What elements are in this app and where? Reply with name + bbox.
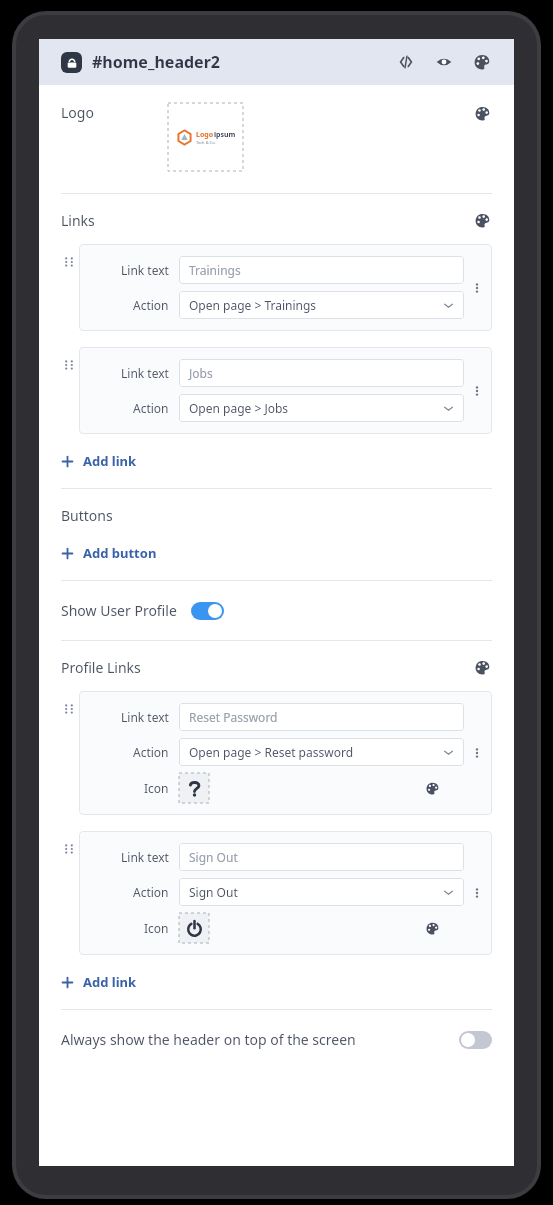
staticText: Tech & Co.	[196, 140, 216, 145]
button[interactable]: More options	[468, 279, 486, 297]
button[interactable]: Theme	[472, 657, 492, 677]
button[interactable]: Preview	[434, 52, 454, 72]
staticText: Logo	[61, 103, 94, 122]
button[interactable]: Link text	[79, 244, 492, 331]
staticText: Trainings	[189, 262, 241, 278]
button[interactable]: Reorder	[61, 254, 77, 270]
staticText: Links	[61, 211, 95, 230]
staticText: Add link	[83, 973, 137, 991]
staticText: Add link	[83, 452, 137, 470]
button[interactable]: Open page > Trainings	[179, 291, 464, 319]
button[interactable]: Link text	[79, 347, 492, 434]
button[interactable]: More options	[468, 744, 486, 762]
button[interactable]: Jobs	[179, 359, 464, 387]
button[interactable]: Sign Out	[179, 843, 464, 871]
staticText: Show User Profile	[61, 601, 177, 620]
button[interactable]: Open page > Jobs	[179, 394, 464, 422]
button[interactable]: Choose icon	[179, 773, 209, 803]
button[interactable]: Code	[396, 52, 416, 72]
staticText: Icon	[144, 780, 169, 796]
button[interactable]: Reorder	[61, 357, 77, 373]
button[interactable]: Reorder	[61, 841, 77, 857]
staticText: Action	[133, 884, 169, 900]
button[interactable]: Show User Profile	[61, 581, 492, 640]
staticText: Open page > Jobs	[189, 400, 289, 416]
staticText: Open page > Trainings	[189, 297, 317, 313]
button[interactable]: Toggle	[459, 1031, 492, 1049]
button[interactable]: Reset Password	[179, 703, 464, 731]
staticText: Link text	[121, 849, 169, 865]
button[interactable]: Add link	[61, 969, 137, 995]
button[interactable]: Theme	[472, 210, 492, 230]
staticText: Action	[133, 297, 169, 313]
button[interactable]: Icon theme	[422, 918, 442, 938]
staticText: Action	[133, 400, 169, 416]
staticText: #home_header2	[92, 51, 220, 73]
staticText: Always show the header on top of the scr…	[61, 1030, 356, 1049]
button[interactable]: Add link	[61, 448, 137, 474]
staticText: Logo	[196, 130, 214, 140]
button[interactable]: Link text	[79, 691, 492, 815]
staticText: Link text	[121, 262, 169, 278]
button[interactable]: Sign Out	[179, 878, 464, 906]
staticText: Buttons	[61, 506, 113, 525]
staticText: ipsum	[214, 130, 236, 140]
button[interactable]: Link text	[79, 831, 492, 955]
staticText: Add button	[83, 544, 157, 562]
staticText: Jobs	[189, 365, 213, 381]
button[interactable]: Add button	[61, 540, 157, 566]
button[interactable]: More options	[468, 382, 486, 400]
button[interactable]: Theme	[472, 103, 492, 123]
staticText: Icon	[144, 920, 169, 936]
staticText: Sign Out	[189, 884, 238, 900]
button[interactable]: Theme	[472, 52, 492, 72]
staticText: Link text	[121, 709, 169, 725]
button[interactable]: Reorder	[61, 701, 77, 717]
button[interactable]: More options	[468, 884, 486, 902]
staticText: Profile Links	[61, 658, 141, 677]
button[interactable]: Always show the header on top of the scr…	[61, 1010, 492, 1069]
button[interactable]: Choose icon	[179, 913, 209, 943]
staticText: Action	[133, 744, 169, 760]
staticText: Sign Out	[189, 849, 238, 865]
button[interactable]: Trainings	[179, 256, 464, 284]
button[interactable]: Open page > Reset password	[179, 738, 464, 766]
button[interactable]: Icon theme	[422, 778, 442, 798]
staticText: Link text	[121, 365, 169, 381]
staticText: Reset Password	[189, 709, 278, 725]
button[interactable]: Toggle	[191, 602, 224, 620]
staticText: Open page > Reset password	[189, 744, 354, 760]
